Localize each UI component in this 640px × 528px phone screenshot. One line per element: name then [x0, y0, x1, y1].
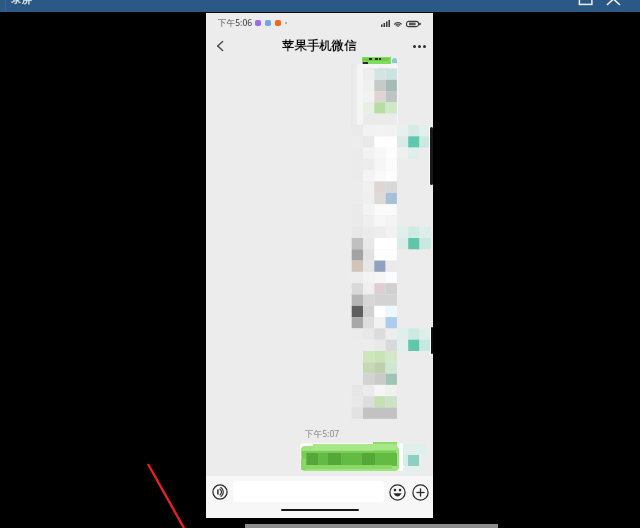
button[interactable]: Close [595, 0, 640, 12]
staticText: 录屏 [11, 0, 32, 5]
button[interactable]: Back [208, 34, 232, 58]
button[interactable]: More functions [409, 481, 431, 503]
button[interactable]: Voice message [209, 481, 231, 503]
button[interactable]: Emoji [386, 481, 408, 503]
button[interactable]: More options [407, 34, 431, 58]
staticText: 下午5:06 [218, 17, 253, 29]
staticText: 苹果手机微信 [282, 38, 357, 54]
staticText: 下午5:07 [305, 428, 340, 440]
button[interactable]: Maximize [561, 0, 592, 12]
